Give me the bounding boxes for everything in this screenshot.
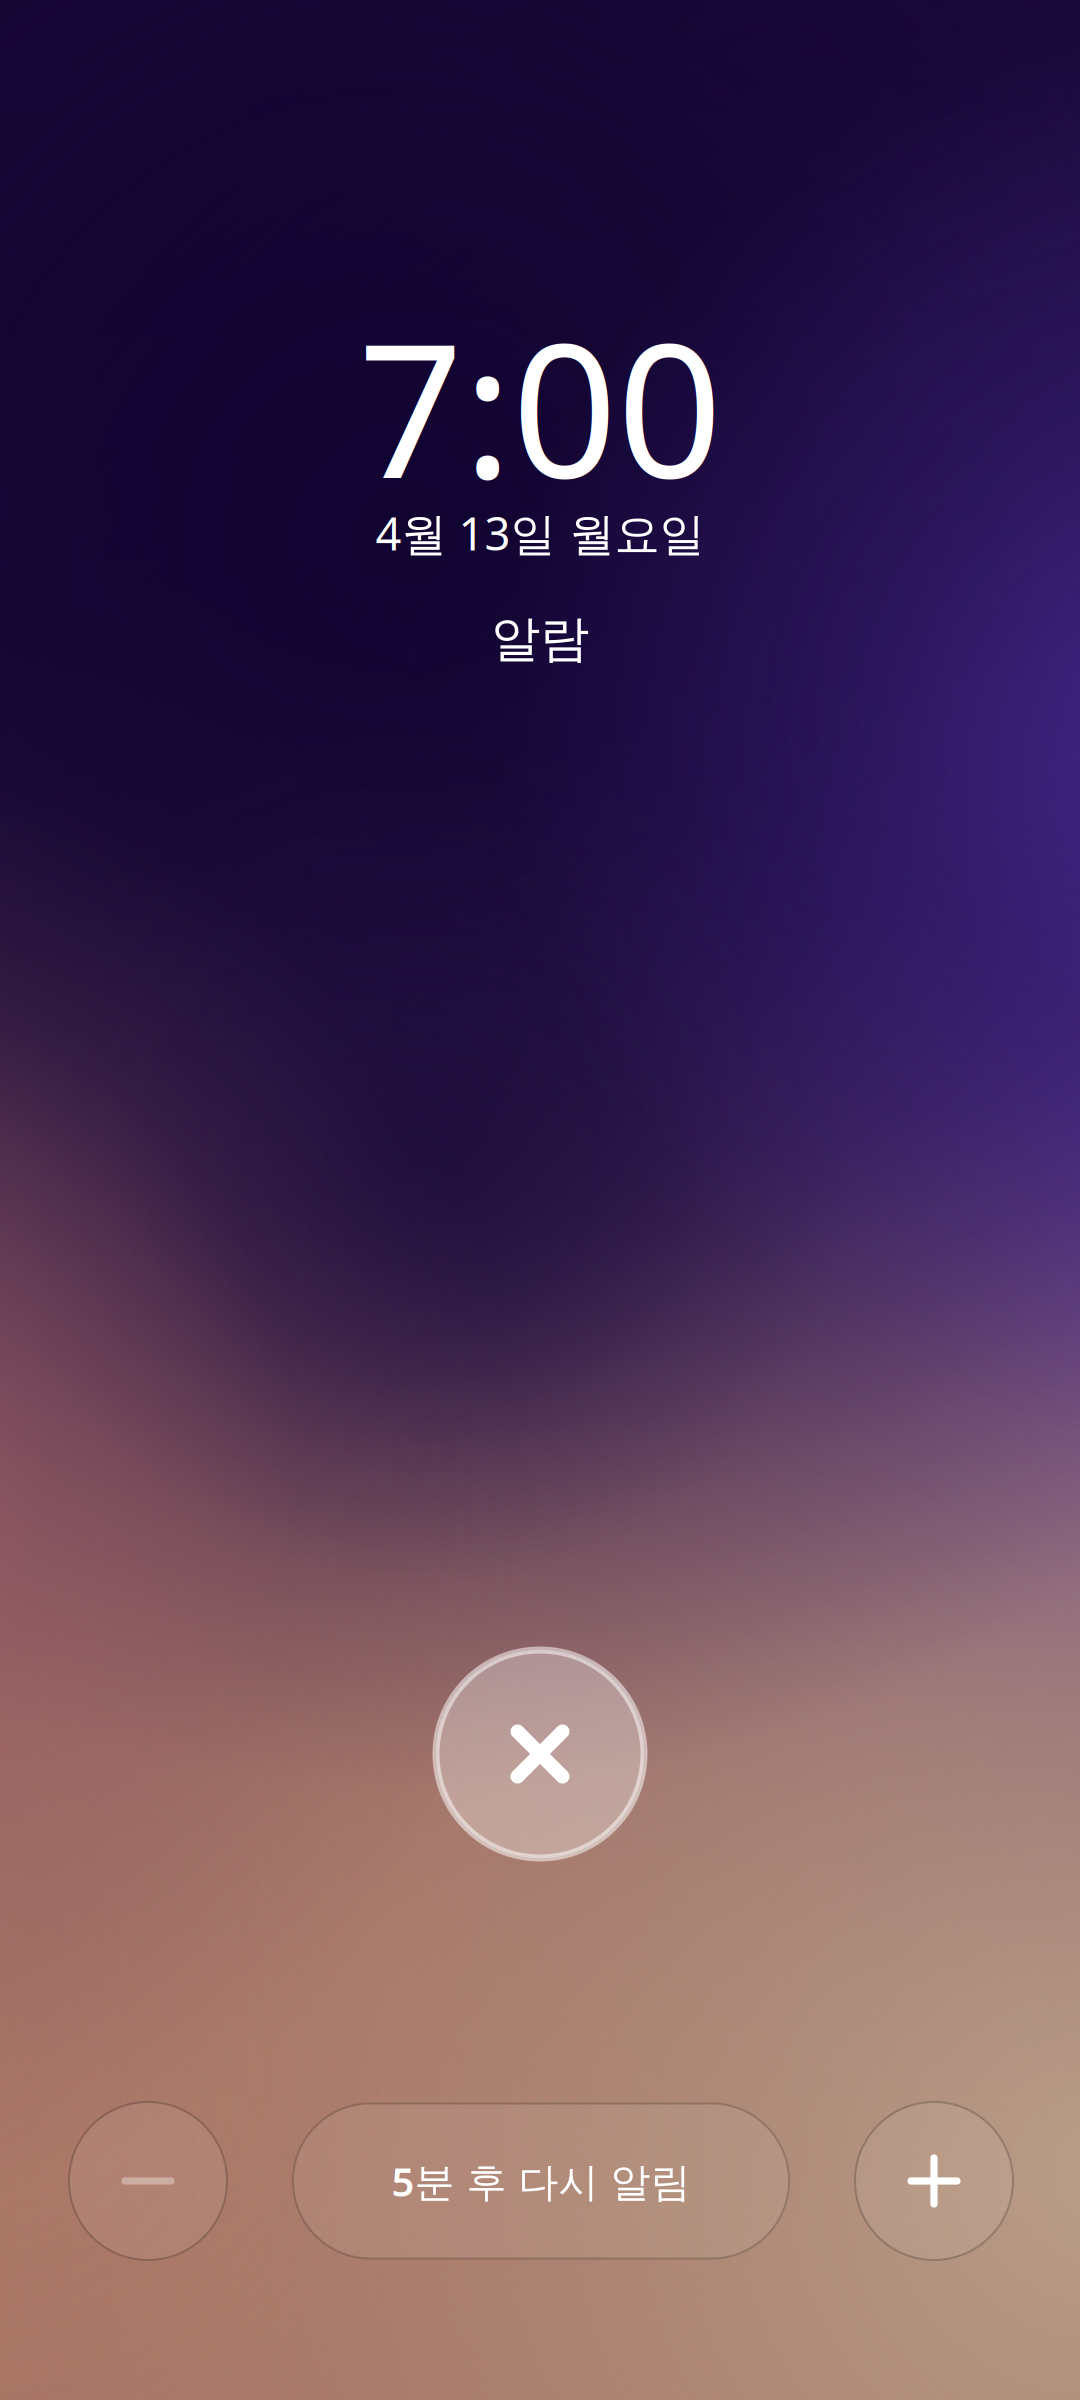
staticText: 알람 xyxy=(491,609,589,669)
staticText: 5분 후 다시 알림 xyxy=(391,2154,690,2207)
button[interactable]: 시간 줄이기 xyxy=(69,2102,227,2260)
staticText: 7:00 xyxy=(358,284,722,528)
staticText: 4월 13일 월요일 xyxy=(375,503,704,563)
button[interactable]: 시간 늘리기 xyxy=(855,2102,1013,2260)
button[interactable]: 알람 끄기 xyxy=(436,1650,644,1858)
button[interactable]: 5분 후 다시 알림 xyxy=(293,2103,789,2258)
